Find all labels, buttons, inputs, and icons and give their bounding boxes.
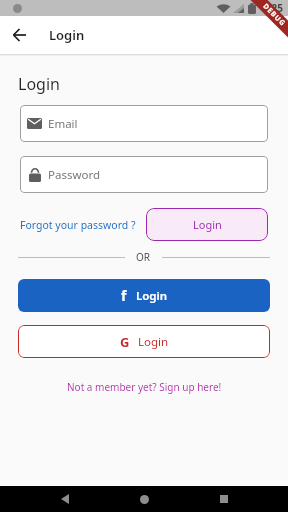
button[interactable]: Email — [20, 105, 268, 142]
button[interactable]: G — [18, 325, 270, 358]
staticText: Login — [193, 217, 222, 232]
button[interactable]: Not a member yet? Sign up here! — [67, 380, 222, 394]
button[interactable] — [211, 486, 237, 512]
staticText: Login — [136, 288, 168, 304]
staticText: Email — [48, 116, 78, 132]
button[interactable] — [0, 16, 38, 54]
staticText: G — [120, 333, 130, 351]
staticText: Login — [138, 334, 169, 350]
button[interactable]: f — [18, 279, 270, 312]
button[interactable] — [52, 486, 78, 512]
staticText: 9:25 — [263, 1, 283, 15]
button[interactable]: Login — [146, 208, 268, 241]
staticText: OR — [136, 250, 151, 264]
staticText: Login — [49, 26, 85, 44]
staticText: DEBUG — [261, 2, 288, 29]
button[interactable]: Forgot your password ? — [20, 218, 136, 232]
staticText: Password — [48, 167, 101, 183]
button[interactable]: Password — [20, 156, 268, 193]
button[interactable] — [131, 486, 157, 512]
staticText: Login — [18, 73, 60, 95]
staticText: f — [121, 286, 127, 305]
